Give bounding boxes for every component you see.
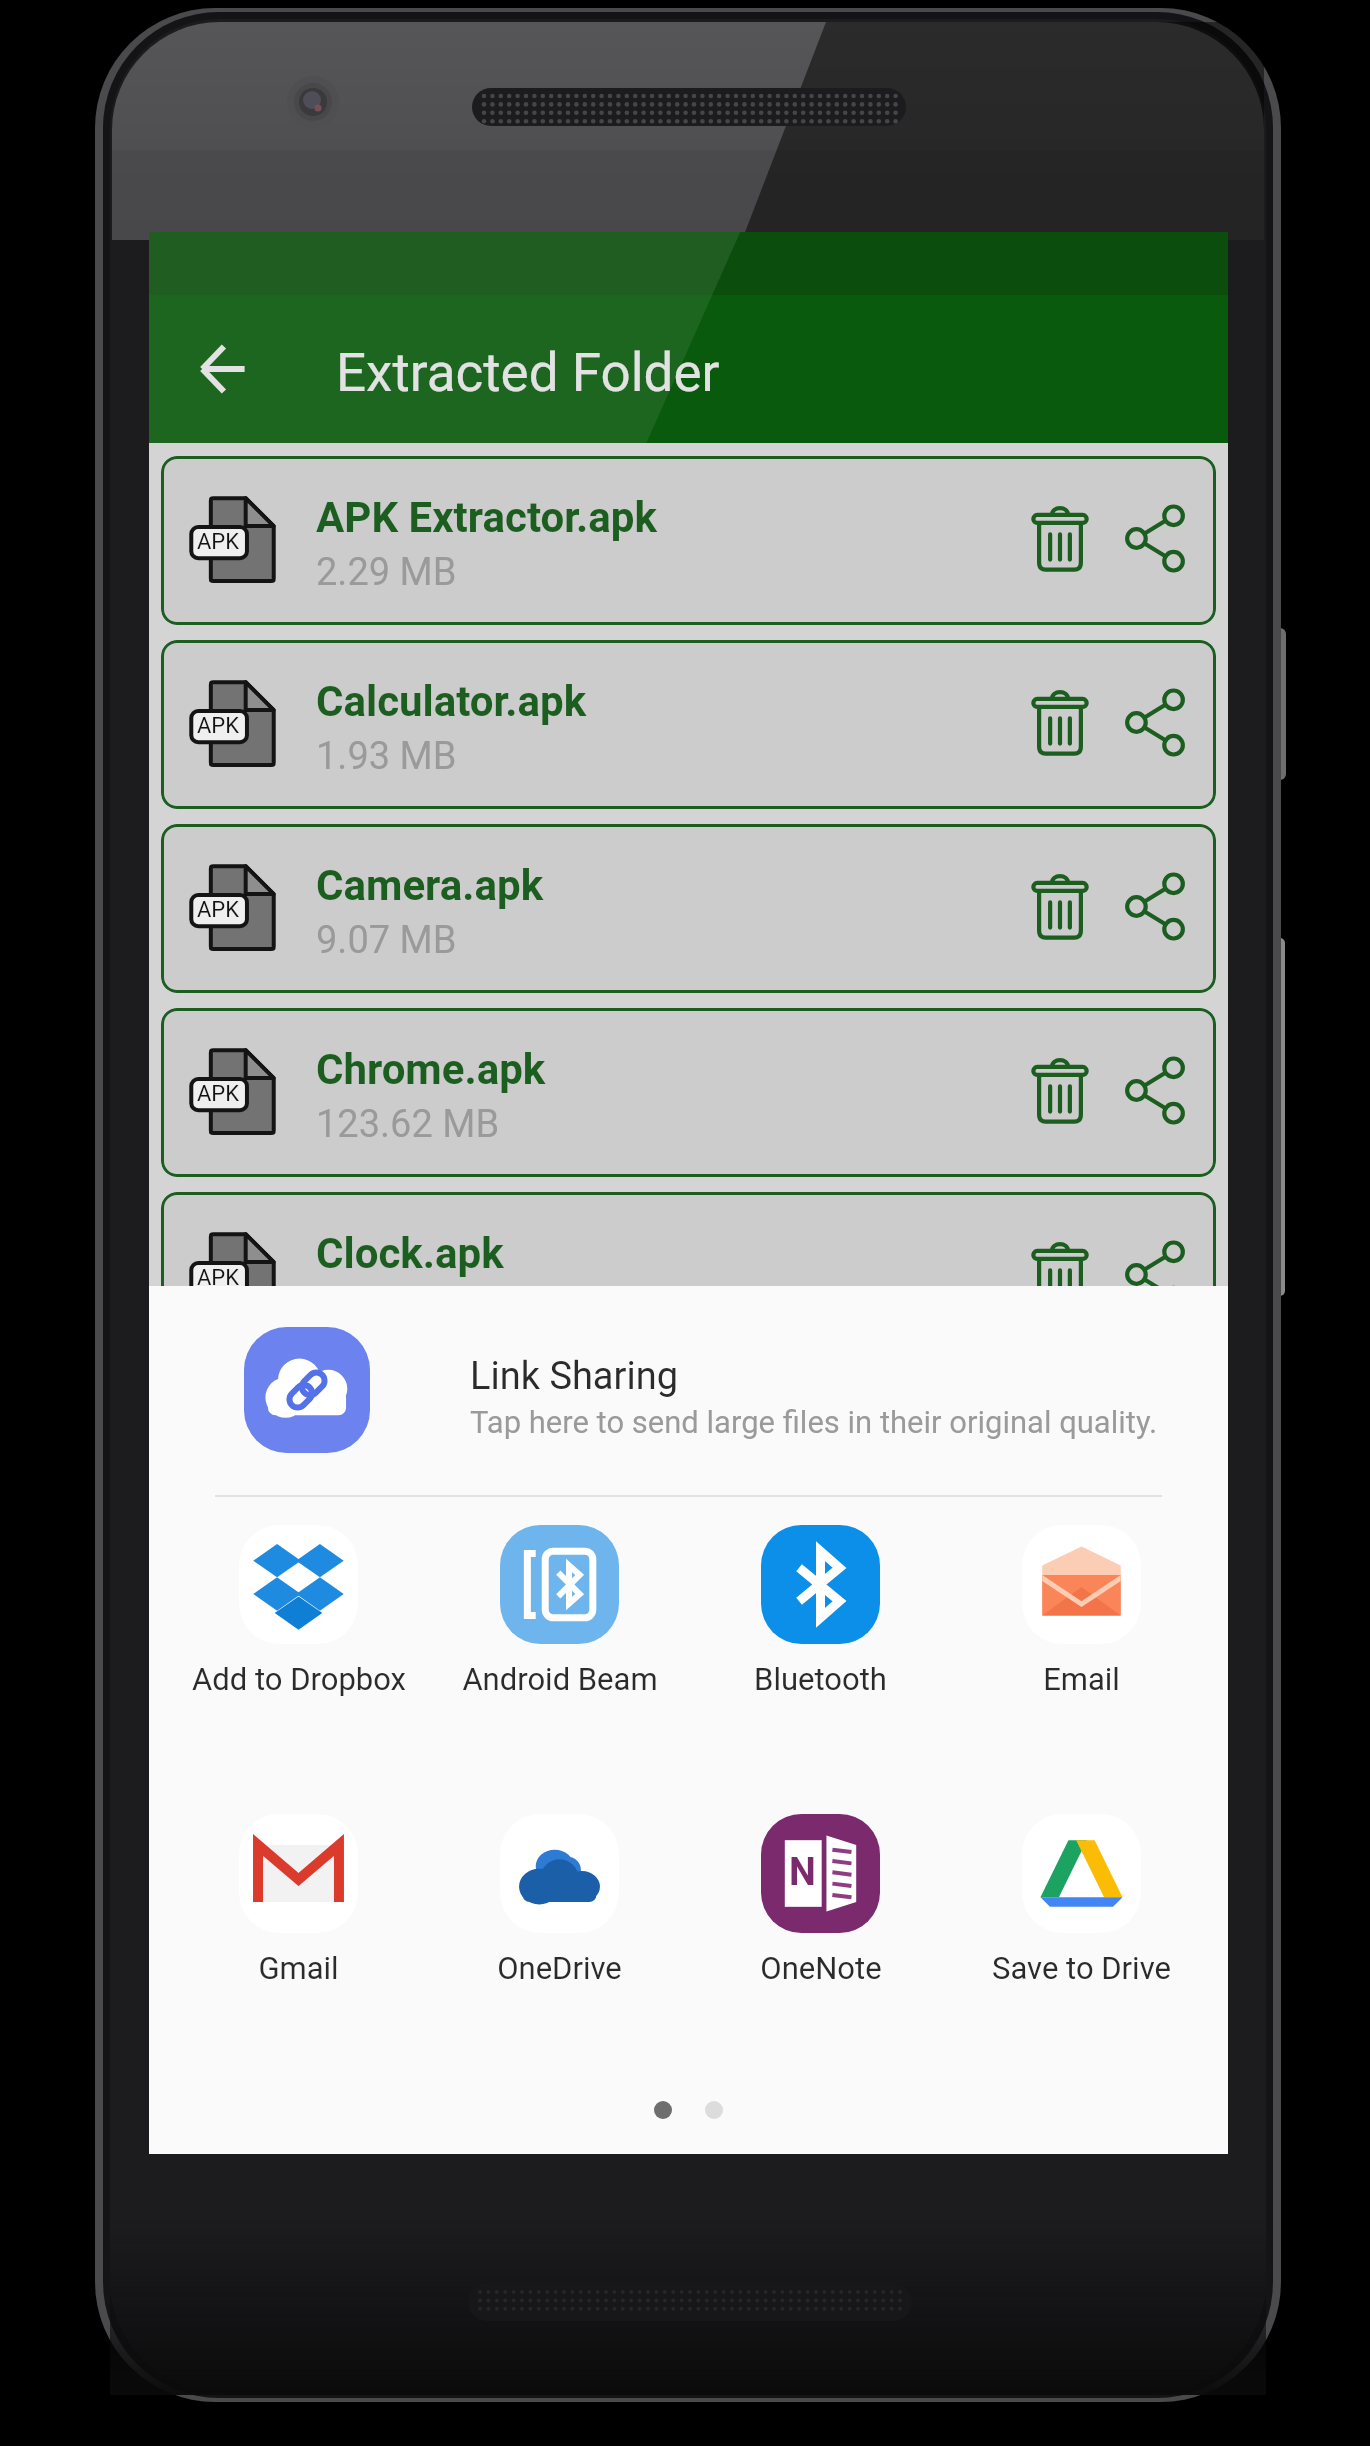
button[interactable]: Share xyxy=(1101,1220,1209,1328)
button[interactable]: Save to Drive xyxy=(951,1814,1212,1986)
staticText: Add to Dropbox xyxy=(192,1661,406,1697)
staticText: APK xyxy=(197,713,240,739)
button[interactable]: APK xyxy=(161,640,1216,809)
staticText: 15.00 MB xyxy=(316,1286,478,1331)
button[interactable]: Delete xyxy=(1006,1220,1114,1328)
button[interactable]: Delete xyxy=(1006,668,1114,776)
staticText: OneDrive xyxy=(497,1950,622,1986)
staticText: APK xyxy=(197,1265,240,1291)
staticText: Clock.apk xyxy=(316,1229,504,1278)
button[interactable]: Android Beam xyxy=(429,1525,690,1697)
staticText: Extracted Folder xyxy=(336,342,720,404)
staticText: Camera.apk xyxy=(316,861,544,910)
staticText: APK xyxy=(197,897,240,923)
staticText: 9.07 MB xyxy=(316,918,457,963)
button[interactable]: Gmail xyxy=(168,1814,429,1986)
button[interactable]: Share xyxy=(1101,1036,1209,1144)
staticText: Gmail xyxy=(258,1950,339,1986)
button[interactable]: Link Sharing xyxy=(149,1325,1228,1455)
staticText: Chrome.apk xyxy=(316,1045,546,1094)
button[interactable]: OneDrive xyxy=(429,1814,690,1986)
staticText: Bluetooth xyxy=(754,1661,887,1697)
staticText: APK xyxy=(197,529,240,555)
button[interactable]: Share xyxy=(1101,668,1209,776)
staticText: OneNote xyxy=(760,1950,882,1986)
staticText: Link Sharing xyxy=(470,1354,678,1399)
button[interactable]: Page 1 xyxy=(654,2101,672,2119)
button[interactable]: N xyxy=(690,1814,951,1986)
button[interactable]: Add to Dropbox xyxy=(168,1525,429,1697)
button[interactable]: Share xyxy=(1101,484,1209,592)
staticText: N xyxy=(789,1850,816,1895)
staticText: 2.29 MB xyxy=(316,550,457,595)
staticText: Tap here to send large files in their or… xyxy=(470,1404,1158,1440)
button[interactable]: Delete xyxy=(1006,1036,1114,1144)
staticText: Email xyxy=(1043,1661,1120,1697)
staticText: APK xyxy=(197,1081,240,1107)
button[interactable]: Page 2 xyxy=(705,2101,723,2119)
staticText: 1.93 MB xyxy=(316,734,457,779)
button[interactable]: Back xyxy=(175,321,271,417)
button[interactable]: APK xyxy=(161,824,1216,993)
staticText: Save to Drive xyxy=(992,1950,1171,1986)
button[interactable]: APK xyxy=(161,1192,1216,1361)
button[interactable]: Share xyxy=(1101,852,1209,960)
button[interactable]: APK xyxy=(161,1008,1216,1177)
button[interactable]: Email xyxy=(951,1525,1212,1697)
staticText: Calculator.apk xyxy=(316,677,587,726)
staticText: 123.62 MB xyxy=(316,1102,500,1147)
staticText: Android Beam xyxy=(462,1661,658,1697)
staticText: APK Extractor.apk xyxy=(316,493,657,542)
button[interactable]: APK xyxy=(161,456,1216,625)
button[interactable]: Delete xyxy=(1006,484,1114,592)
button[interactable]: Delete xyxy=(1006,852,1114,960)
button[interactable]: Bluetooth xyxy=(690,1525,951,1697)
